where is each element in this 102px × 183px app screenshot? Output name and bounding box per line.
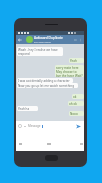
button[interactable]: Home bbox=[46, 141, 52, 147]
staticText: ok bbox=[73, 95, 77, 99]
button[interactable]: Yeah bbox=[69, 58, 84, 63]
other: Emoji bbox=[18, 124, 22, 128]
staticText: Yeah bbox=[70, 59, 77, 63]
other: More options bbox=[79, 38, 82, 42]
staticText: Awkward Duplicate bbox=[34, 36, 63, 40]
staticText: Message bbox=[28, 124, 41, 128]
button[interactable]: Now you go up let me watch something bbox=[17, 83, 78, 88]
button[interactable]: oh ok bbox=[68, 101, 84, 106]
staticText: Nooo bbox=[70, 112, 78, 116]
staticText: last seen today bbox=[34, 40, 51, 43]
button[interactable]: I was accidentally adding a character bbox=[17, 78, 73, 83]
other: Video call bbox=[74, 38, 78, 42]
staticText: Yeah ha bbox=[18, 107, 30, 111]
button[interactable]: Recent apps bbox=[78, 141, 84, 147]
button[interactable]: ok bbox=[72, 94, 84, 99]
other: Back bbox=[18, 38, 22, 42]
staticText: I was accidentally adding a character bbox=[18, 79, 70, 83]
staticText: Woah - hey I realise we have respond bbox=[18, 48, 58, 56]
button[interactable]: Woah - hey I realise we have respond bbox=[17, 47, 63, 56]
button[interactable]: Nooo bbox=[69, 111, 84, 116]
other: Send bbox=[76, 124, 81, 129]
staticText: Now you go up let me watch something bbox=[18, 84, 75, 88]
button[interactable]: Back bbox=[16, 35, 84, 44]
button[interactable]: Emoji bbox=[16, 121, 84, 131]
button[interactable]: Home button bbox=[45, 155, 58, 161]
button[interactable]: Back bbox=[17, 141, 23, 147]
staticText: sorry mate here May choose to bye the hy… bbox=[56, 66, 83, 77]
staticText: oh ok bbox=[69, 102, 77, 106]
button[interactable]: sorry mate here May choose to bye the hy… bbox=[55, 65, 84, 77]
button[interactable]: Yeah ha bbox=[17, 106, 38, 111]
